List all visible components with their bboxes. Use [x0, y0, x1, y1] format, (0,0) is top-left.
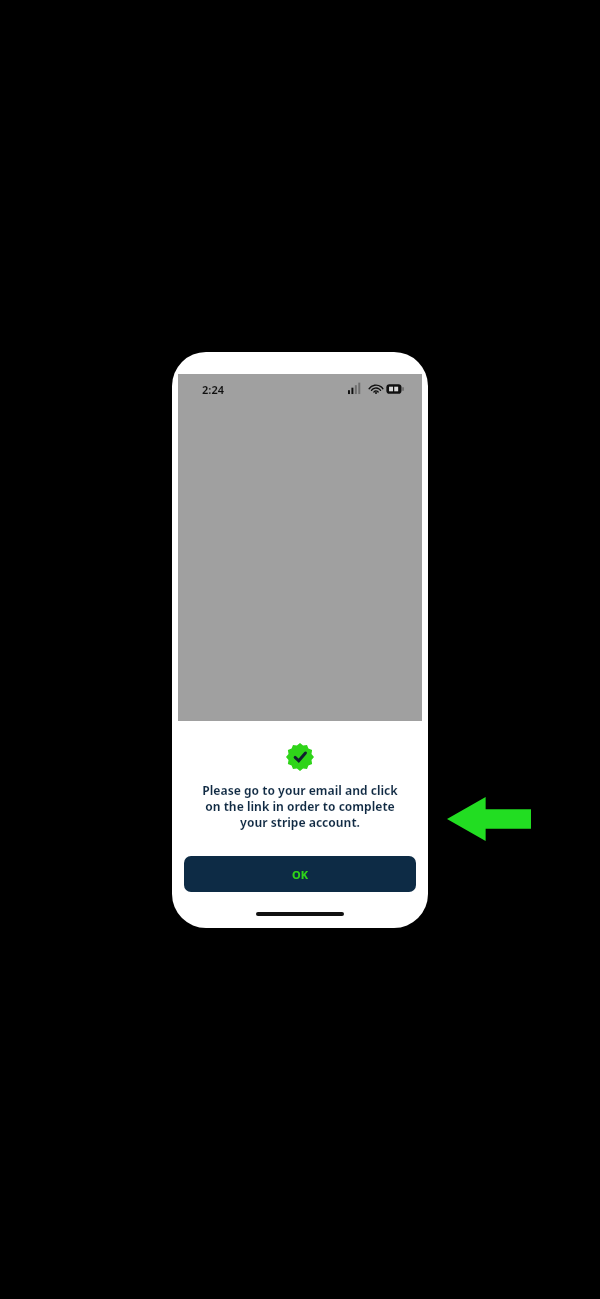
staticText: 2:24	[202, 382, 224, 397]
staticText: Please go to your email and click on the…	[172, 782, 428, 830]
staticText: OK	[292, 867, 309, 882]
button[interactable]: OK	[184, 856, 416, 892]
other: Pointer arrow	[447, 797, 531, 841]
